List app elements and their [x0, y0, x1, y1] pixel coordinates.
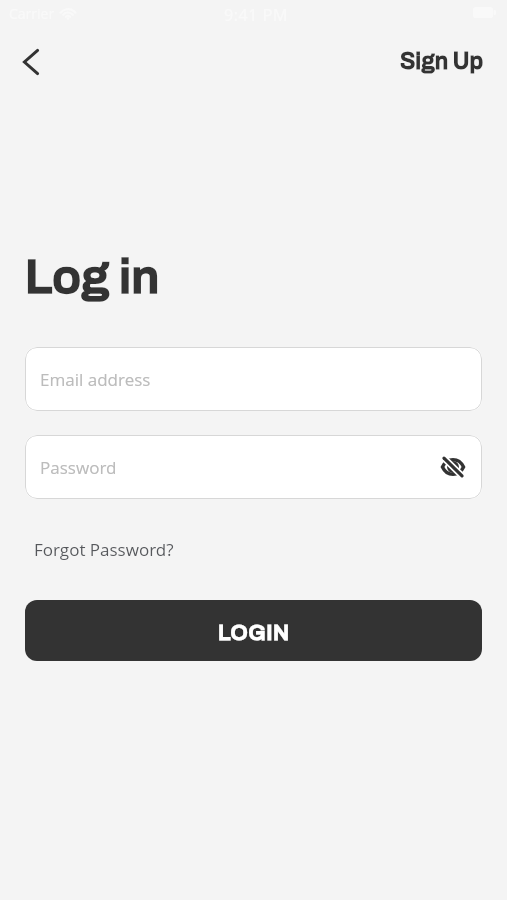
button[interactable]: LOGIN	[25, 600, 482, 661]
button[interactable]: Sign Up	[390, 41, 494, 81]
staticText: Password	[40, 456, 117, 479]
staticText: LOGIN	[218, 621, 290, 645]
staticText: Sign Up	[400, 49, 484, 74]
staticText: Forgot Password?	[34, 538, 174, 561]
staticText: Email address	[40, 368, 151, 391]
staticText: Log in	[25, 251, 160, 303]
button[interactable]: Email address	[25, 347, 482, 411]
button[interactable]: Show password	[435, 449, 471, 485]
button[interactable]: Back	[10, 40, 54, 84]
button[interactable]: Forgot Password?	[34, 538, 174, 561]
button[interactable]: Password	[25, 435, 482, 499]
